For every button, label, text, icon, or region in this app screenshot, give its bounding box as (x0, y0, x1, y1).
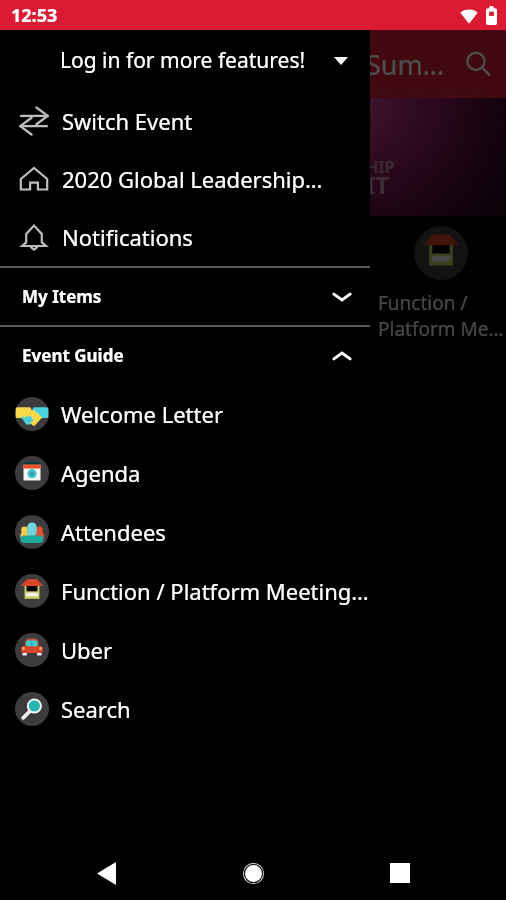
staticText: 2020 Global Leadership… (62, 164, 323, 194)
staticText: HIP (366, 156, 395, 178)
staticText: Search (61, 694, 131, 724)
button[interactable]: 2020 Global Leadership… (0, 150, 370, 208)
button[interactable]: Attendees (0, 502, 370, 561)
button[interactable]: Home (236, 856, 270, 890)
button[interactable]: Function / Platform Meeting … (0, 561, 370, 620)
button[interactable]: My Items (0, 268, 370, 325)
staticText: My Items (22, 285, 102, 308)
button[interactable]: Switch Event (0, 92, 370, 150)
staticText: Uber (61, 635, 113, 665)
staticText: Log in for more features! (60, 46, 306, 75)
staticText: Attendees (61, 517, 166, 547)
button[interactable]: Log in for more features! (0, 30, 370, 91)
button[interactable]: Event Guide (0, 327, 370, 384)
button[interactable]: Agenda (0, 443, 370, 502)
button[interactable]: Search (454, 40, 502, 88)
staticText: Switch Event (62, 106, 193, 136)
button[interactable]: Search (0, 679, 370, 738)
button[interactable]: Recent apps (383, 856, 417, 890)
button[interactable]: Notifications (0, 208, 370, 266)
staticText: Event Guide (22, 344, 124, 367)
staticText: Welcome Letter (61, 399, 223, 429)
button[interactable]: Back (89, 856, 123, 890)
staticText: Function / Platform Me… (378, 290, 504, 342)
button[interactable]: Uber (0, 620, 370, 679)
staticText: Notifications (62, 222, 193, 252)
staticText: 12:53 (11, 3, 58, 28)
staticText: IT (366, 168, 390, 201)
staticText: Function / Platform Meeting … (61, 576, 370, 606)
staticText: Agenda (61, 458, 141, 488)
button[interactable]: Welcome Letter (0, 384, 370, 443)
staticText: Sum… (366, 46, 445, 83)
